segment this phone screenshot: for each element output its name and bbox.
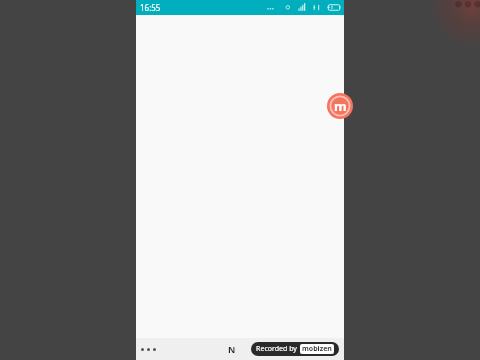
button[interactable]: Mobizen recorder	[327, 93, 353, 119]
staticText: 16:55	[140, 2, 161, 13]
staticText: N	[228, 343, 236, 355]
staticText: mobizen	[302, 344, 332, 354]
staticText: Recorded by	[256, 344, 297, 354]
button[interactable]: More options	[141, 348, 156, 351]
staticText: m	[334, 97, 347, 115]
